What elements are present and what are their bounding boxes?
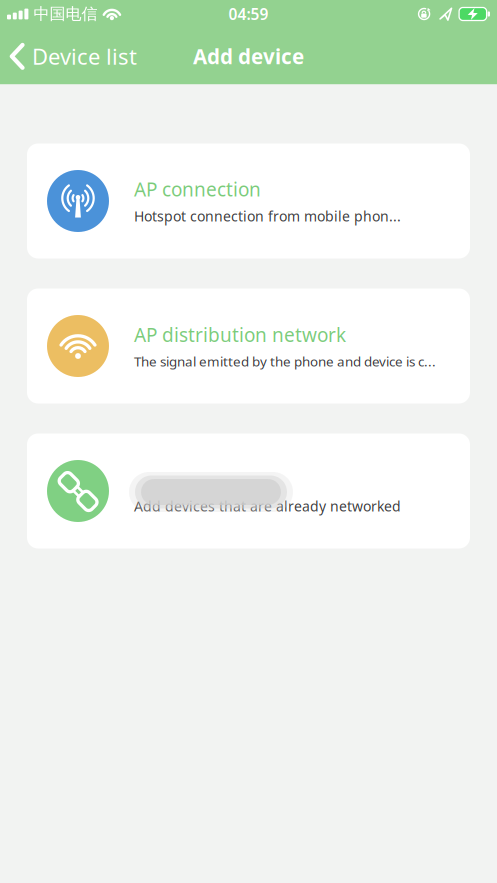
staticText: 04:59 [228,3,268,24]
button[interactable]: Back to device list [0,41,137,71]
button[interactable]: Add networked devices [27,433,470,548]
staticText: AP distribution network [134,322,346,348]
staticText: Add networked devices [134,466,343,492]
staticText: The signal emitted by the phone and devi… [134,352,436,370]
button[interactable]: AP distribution network [27,288,470,403]
button[interactable]: AP connection [27,143,470,258]
staticText: AP connection [134,176,261,202]
staticText: 中国电信 [33,4,97,24]
staticText: Hotspot connection from mobile phon... [134,207,401,226]
staticText: Device list [32,41,137,71]
staticText: Add devices that are already networked [134,497,401,516]
staticText: Add device [193,42,304,70]
